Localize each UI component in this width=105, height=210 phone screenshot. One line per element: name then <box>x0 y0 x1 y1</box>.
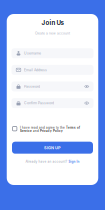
button[interactable]: Email Address <box>11 65 93 75</box>
staticText: Email Address <box>24 68 47 72</box>
button[interactable]: Already have an account? <box>25 160 80 163</box>
button[interactable]: Password <box>11 81 93 91</box>
staticText: SIGN UP <box>44 145 61 150</box>
button[interactable]: SIGN UP <box>12 142 93 154</box>
staticText: Create a new account <box>35 31 70 35</box>
staticText: Username <box>24 51 41 55</box>
staticText: Password <box>24 84 40 89</box>
button[interactable]: I have read and agree to the Terms of Se… <box>12 126 92 133</box>
staticText: Join Us <box>41 19 63 26</box>
button[interactable]: Username <box>11 48 93 58</box>
staticText: Sign In <box>69 160 80 163</box>
staticText: I have read and agree to the Terms of Se… <box>20 126 80 133</box>
button[interactable]: Confirm Password <box>11 98 93 108</box>
staticText: Already have an account? <box>25 160 67 163</box>
staticText: Confirm Password <box>24 101 54 105</box>
